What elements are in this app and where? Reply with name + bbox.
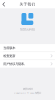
staticText: 当前版本 <box>3 46 15 50</box>
button[interactable]: 检查更新 <box>0 52 55 60</box>
staticText: 检查更新 <box>3 54 15 58</box>
button[interactable]: 用户协议与隐私 <box>0 60 55 68</box>
staticText: 智慧云科技 <box>20 28 35 31</box>
staticText: Copyright © 2024 智慧云 <box>14 91 41 94</box>
staticText: 关于我们 <box>19 2 35 7</box>
staticText: 智慧云科技 <box>22 87 32 90</box>
button[interactable]: 当前版本 <box>0 44 55 52</box>
button[interactable]: Back <box>0 0 9 9</box>
staticText: 用户协议与隐私 <box>3 62 24 66</box>
